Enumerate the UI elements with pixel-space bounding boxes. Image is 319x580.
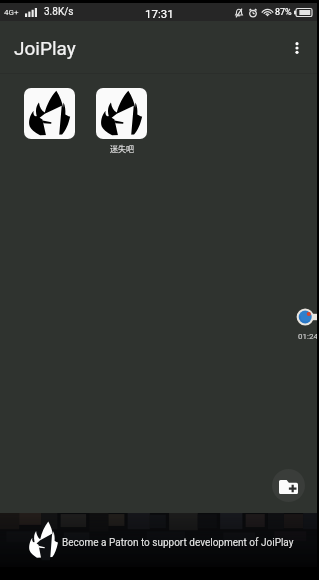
staticText: 17:31 [145, 7, 174, 20]
button[interactable]: More options [275, 26, 319, 70]
staticText: 87% [275, 7, 292, 18]
button[interactable]: Add folder [272, 469, 305, 502]
staticText: JoiPlay [14, 37, 76, 59]
button[interactable]: Become a Patron to support development o… [0, 513, 319, 567]
button[interactable] [24, 88, 75, 139]
staticText: 01:24 [298, 332, 318, 341]
staticText: Become a Patron to support development o… [62, 537, 294, 549]
staticText: 3.8K/s [44, 6, 74, 18]
staticText: 4G+ [4, 8, 19, 17]
staticText: 迷失吧 [110, 143, 134, 155]
button[interactable]: 迷失吧 [96, 88, 147, 155]
button[interactable]: Timer [296, 308, 319, 345]
